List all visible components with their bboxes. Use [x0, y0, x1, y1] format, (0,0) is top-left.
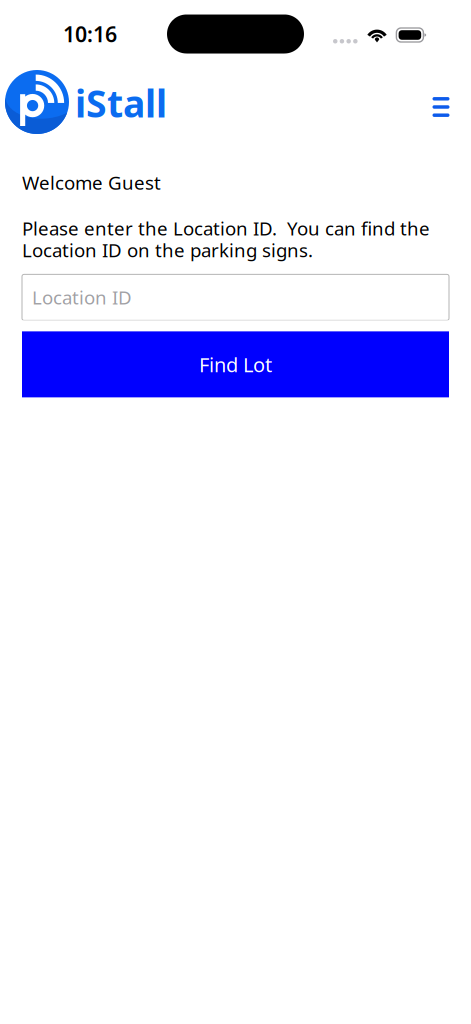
staticText: Location ID [32, 285, 132, 310]
staticText: Welcome Guest [22, 170, 161, 195]
button[interactable]: Location ID [22, 274, 449, 320]
staticText: iStall [75, 78, 167, 128]
staticText: Find Lot [199, 351, 272, 378]
staticText: Please enter the Location ID. You can fi… [22, 216, 430, 262]
staticText: 10:16 [63, 20, 117, 48]
button[interactable]: Menu [419, 85, 463, 129]
button[interactable]: Find Lot [22, 331, 449, 397]
